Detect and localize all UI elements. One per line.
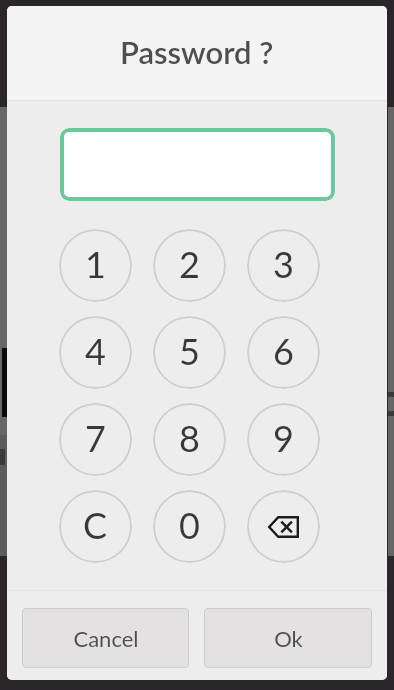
button[interactable]: 0 — [153, 490, 226, 563]
staticText: 0 — [179, 503, 200, 546]
staticText: 2 — [179, 242, 200, 285]
staticText: 6 — [273, 329, 294, 372]
staticText: Ok — [274, 625, 303, 651]
button[interactable]: Ok — [204, 608, 372, 668]
staticText: 5 — [179, 329, 200, 372]
button[interactable]: 6 — [247, 316, 320, 389]
button[interactable]: 2 — [153, 229, 226, 302]
staticText: 7 — [85, 416, 106, 459]
staticText: C — [83, 503, 108, 546]
staticText: 1 — [85, 242, 106, 285]
staticText: Password ? — [120, 33, 274, 70]
button[interactable]: Backspace — [247, 490, 320, 563]
button[interactable]: 4 — [59, 316, 132, 389]
staticText: 8 — [179, 416, 200, 459]
button[interactable]: 9 — [247, 403, 320, 476]
button[interactable]: 3 — [247, 229, 320, 302]
button[interactable]: C — [59, 490, 132, 563]
button[interactable] — [60, 128, 335, 201]
staticText: 4 — [85, 329, 106, 372]
button[interactable]: 7 — [59, 403, 132, 476]
staticText: 9 — [273, 416, 294, 459]
staticText: 3 — [273, 242, 294, 285]
button[interactable]: 5 — [153, 316, 226, 389]
button[interactable]: Cancel — [22, 608, 189, 668]
button[interactable]: 1 — [59, 229, 132, 302]
staticText: Cancel — [73, 625, 139, 651]
button[interactable]: 8 — [153, 403, 226, 476]
